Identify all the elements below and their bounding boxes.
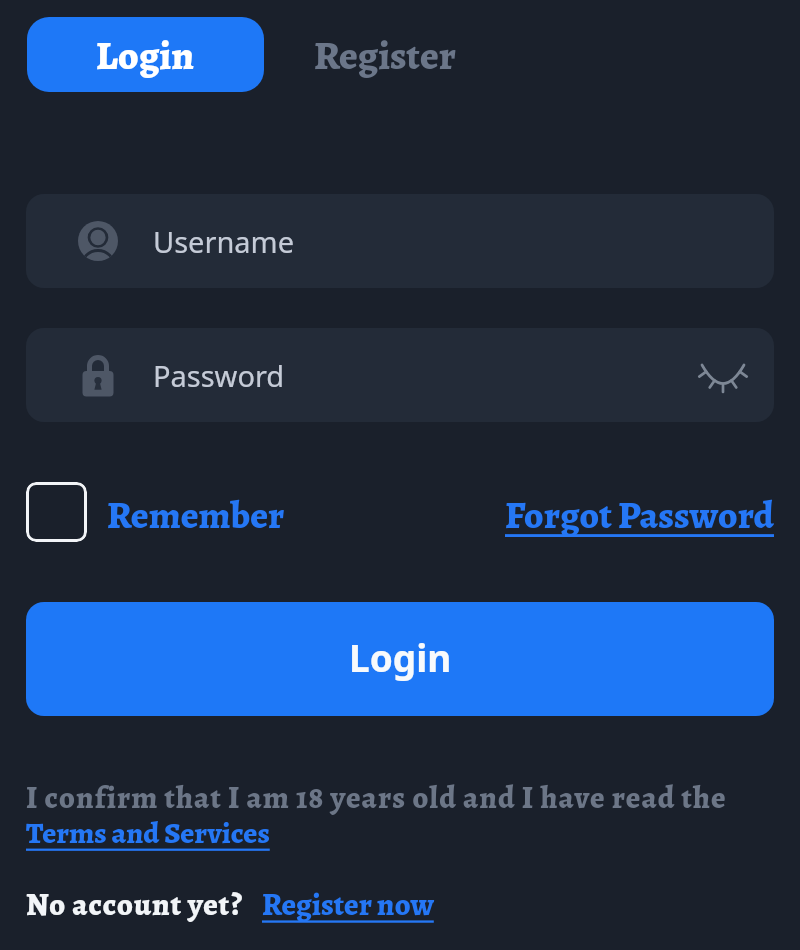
button[interactable] [700, 358, 746, 392]
staticText: No account yet? [26, 884, 243, 926]
staticText: Login [96, 28, 195, 82]
staticText: Password [153, 356, 285, 395]
staticText: Terms and Services [26, 813, 270, 854]
staticText: Forgot Password [505, 489, 774, 541]
staticText: I confirm that I am 18 years old and I h… [26, 777, 727, 819]
staticText: Register [314, 28, 456, 82]
button[interactable]: Register now [262, 884, 434, 926]
button[interactable]: Username [26, 194, 774, 288]
staticText: Register now [262, 884, 434, 926]
button[interactable]: Terms and Services [26, 813, 270, 854]
button[interactable]: Login [26, 602, 774, 716]
staticText: Login [349, 632, 452, 682]
staticText: Username [153, 222, 295, 261]
button[interactable] [26, 482, 87, 542]
staticText: Remember [107, 489, 285, 541]
button[interactable]: Forgot Password [420, 484, 774, 546]
button[interactable]: Register [275, 17, 495, 92]
button[interactable]: Remember [103, 484, 285, 546]
button[interactable]: Password [26, 328, 774, 422]
button[interactable]: Login [27, 17, 264, 92]
